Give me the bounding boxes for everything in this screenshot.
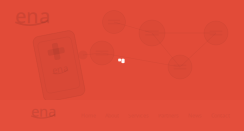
button[interactable]: ena [15, 6, 48, 25]
staticText: ena [31, 101, 56, 121]
button[interactable]: ena [31, 104, 55, 118]
staticText: ena [15, 2, 50, 29]
staticText: ena [51, 63, 67, 75]
